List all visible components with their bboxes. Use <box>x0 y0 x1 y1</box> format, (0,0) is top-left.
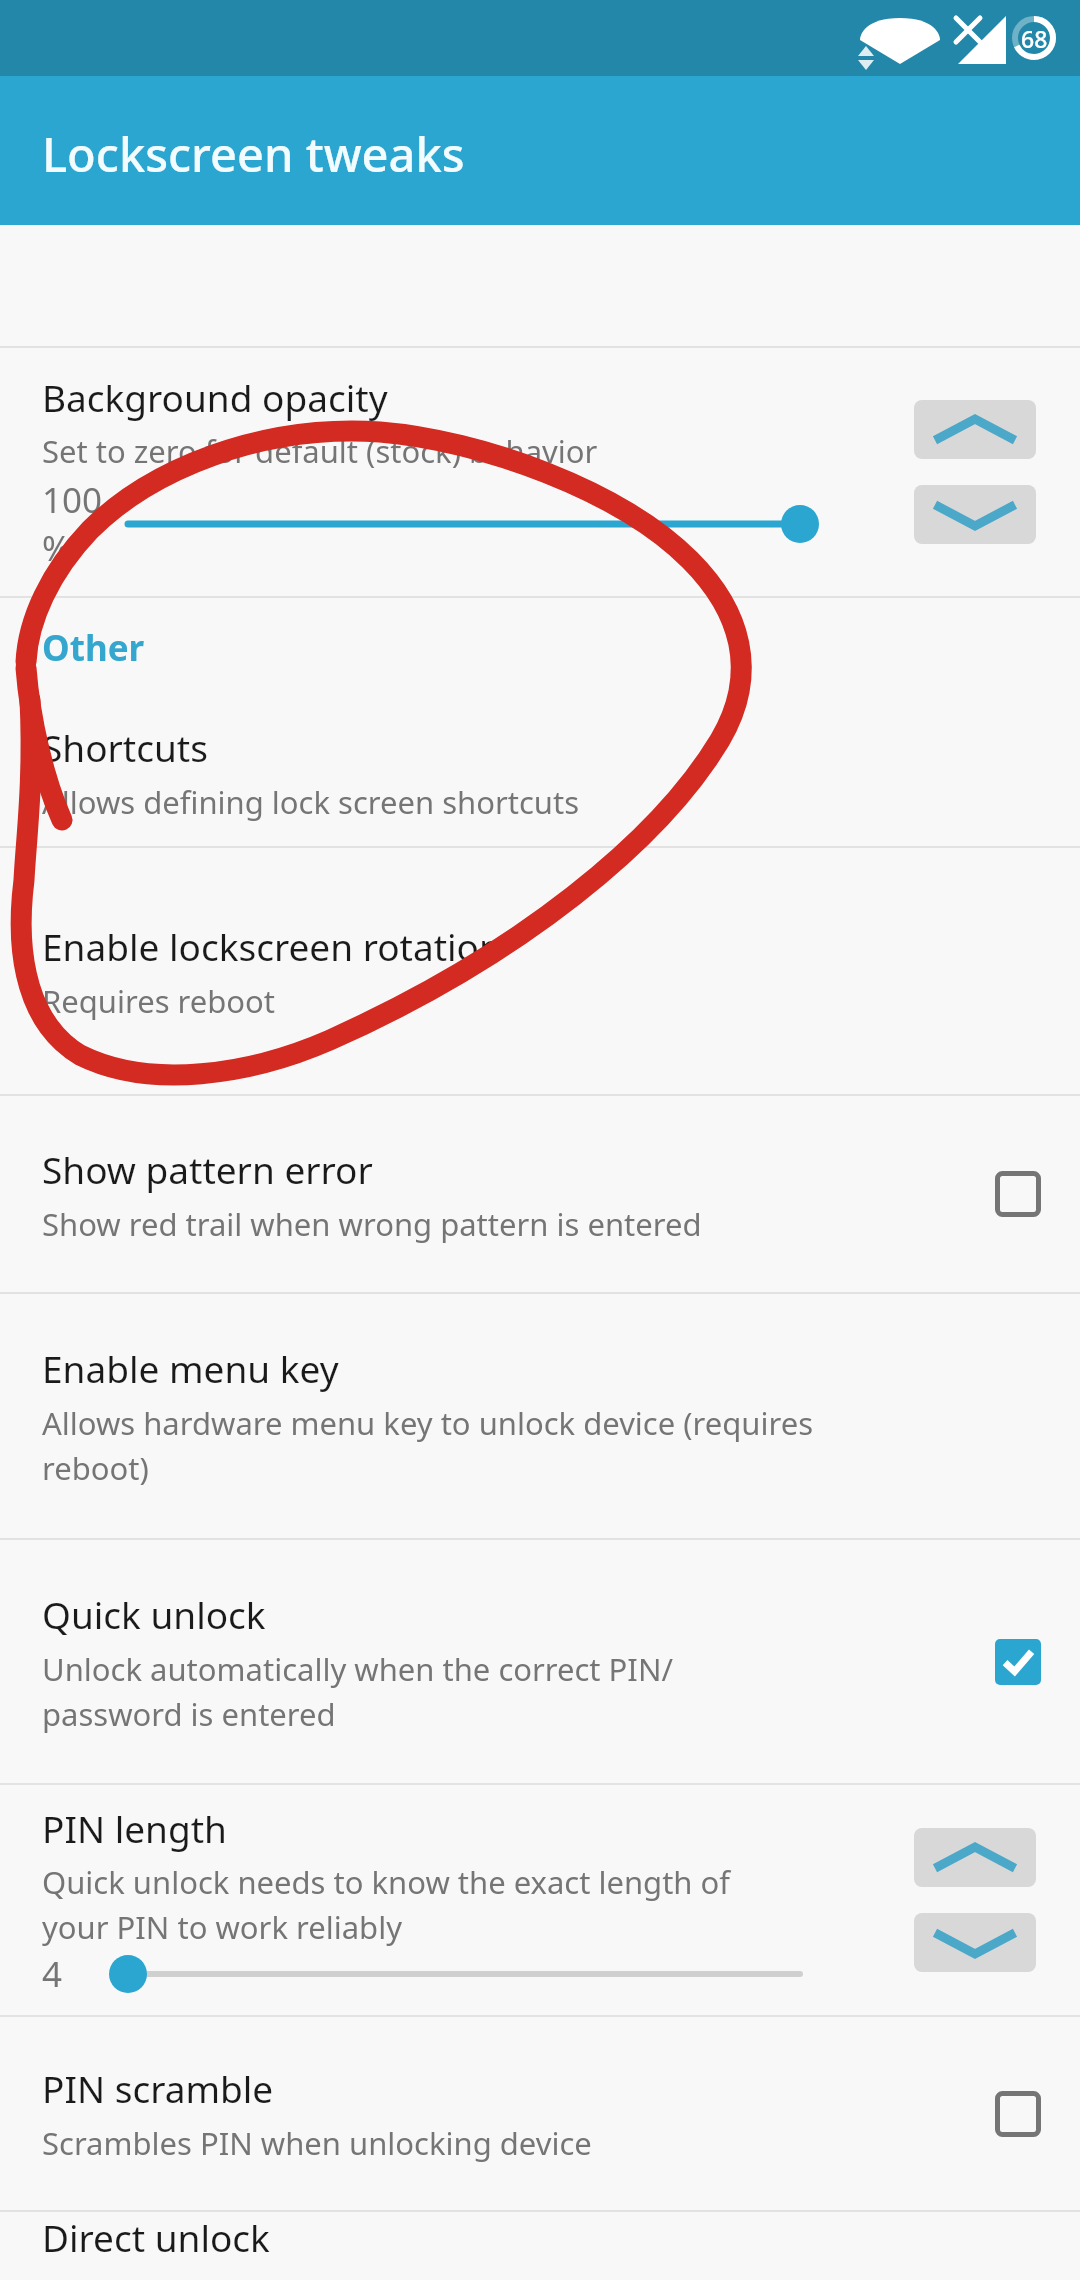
button[interactable]: Increase background opacity <box>914 400 1036 459</box>
button[interactable]: Toggle <box>972 1616 1064 1708</box>
staticText: 100% <box>42 476 114 572</box>
button[interactable]: Show pattern error <box>0 1096 1080 1292</box>
staticText: Quick unlock <box>42 1589 266 1639</box>
staticText: Allows hardware menu key to unlock devic… <box>42 1402 813 1489</box>
staticText: Other <box>42 624 145 672</box>
button[interactable]: Increase PIN length <box>914 1828 1036 1887</box>
button[interactable]: Quick unlock <box>0 1540 1080 1783</box>
button[interactable]: PIN length <box>0 1785 1080 2015</box>
button[interactable]: PIN scramble <box>0 2017 1080 2210</box>
staticText: 4 <box>42 1950 63 1998</box>
staticText: PIN length <box>42 1803 227 1853</box>
button[interactable]: Background opacity <box>0 348 1080 596</box>
staticText: Show pattern error <box>42 1144 373 1194</box>
button[interactable]: Toggle <box>972 2068 1064 2160</box>
staticText: Enable menu key <box>42 1343 339 1393</box>
button[interactable]: Toggle <box>972 1148 1064 1240</box>
button[interactable]: Direct unlock <box>0 2212 1080 2280</box>
staticText: 68 <box>1021 23 1048 54</box>
staticText: Lockscreen tweaks <box>42 122 465 186</box>
button[interactable]: Shortcuts <box>0 698 1080 846</box>
button[interactable]: Decrease background opacity <box>914 485 1036 544</box>
button[interactable]: Enable lockscreen rotation <box>0 848 1080 1094</box>
staticText: Unlock automatically when the correct PI… <box>42 1648 673 1735</box>
staticText: PIN scramble <box>42 2063 274 2113</box>
staticText: Show red trail when wrong pattern is ent… <box>42 1203 702 1245</box>
button[interactable]: Decrease PIN length <box>914 1913 1036 1972</box>
staticText: Allows defining lock screen shortcuts <box>42 781 580 823</box>
staticText: Requires reboot <box>42 980 275 1022</box>
button[interactable]: Enable menu key <box>0 1294 1080 1538</box>
staticText: Set to zero for default (stock) behavior <box>42 430 598 472</box>
staticText: Scrambles PIN when unlocking device <box>42 2122 592 2164</box>
staticText: Shortcuts <box>42 722 208 772</box>
staticText: Enable lockscreen rotation <box>42 921 502 971</box>
staticText: Background opacity <box>42 372 388 422</box>
staticText: Direct unlock <box>42 2212 270 2262</box>
staticText: Quick unlock needs to know the exact len… <box>42 1861 731 1948</box>
